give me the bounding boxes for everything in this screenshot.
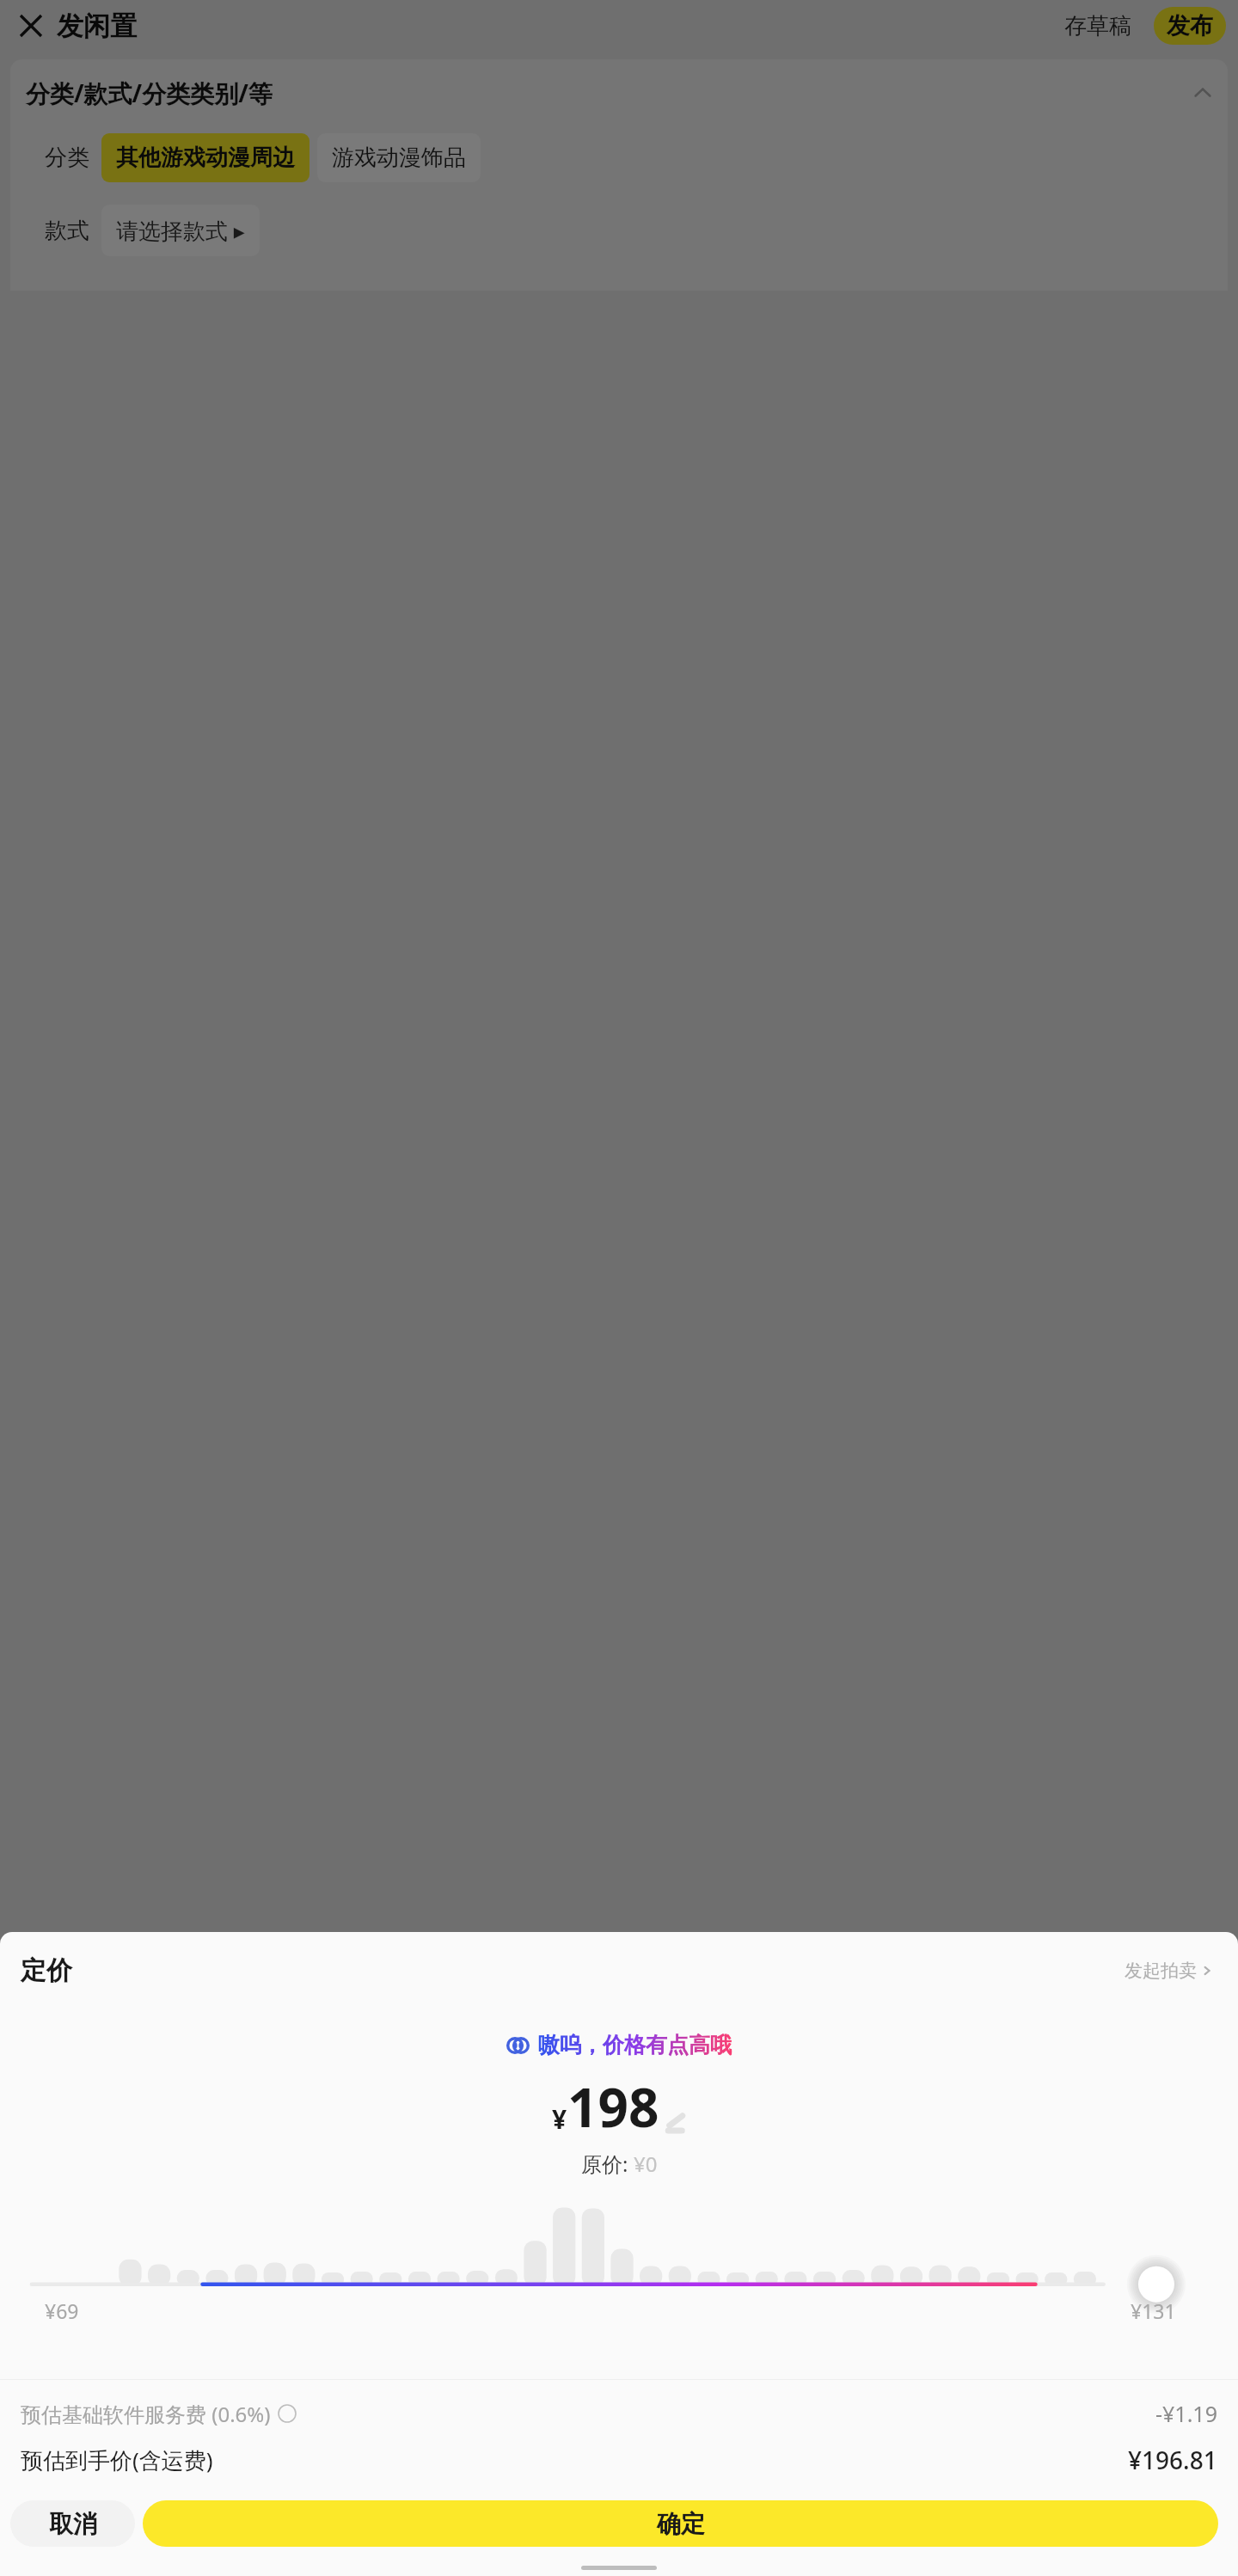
staticText: 原价: — [581, 2150, 634, 2178]
button[interactable]: 取消 — [10, 2500, 135, 2547]
button[interactable]: 关闭 — [12, 7, 50, 45]
staticText: -¥1.19 — [1155, 2399, 1217, 2428]
staticText: 确定 — [657, 2509, 705, 2539]
staticText: 分类/款式/分类类别/等 — [26, 77, 273, 109]
staticText: ¥69 — [45, 2297, 79, 2324]
staticText: ¥0 — [634, 2150, 658, 2178]
button[interactable]: 服务费说明 — [278, 2404, 297, 2423]
staticText: 发起拍卖 — [1125, 1960, 1197, 1982]
staticText: ¥ — [552, 2101, 567, 2137]
staticText: 预估基础软件服务费 (0.6%) — [21, 2400, 271, 2428]
staticText: 款式 — [45, 217, 89, 245]
staticText: 请选择款式 ▸ — [116, 215, 245, 246]
button[interactable]: 确定 — [143, 2500, 1218, 2547]
staticText: ¥196.81 — [1128, 2444, 1217, 2476]
other: 收起 — [1193, 83, 1212, 102]
staticText: 发闲置 — [57, 9, 137, 43]
button[interactable]: 游戏动漫饰品 — [317, 133, 481, 182]
button[interactable]: 存草稿 — [1057, 7, 1138, 46]
button[interactable]: ¥ — [552, 2070, 687, 2143]
button[interactable]: 发起拍卖 — [1121, 1954, 1217, 1987]
button[interactable]: 发布 — [1154, 7, 1226, 45]
staticText: 嗷呜，价格有点高哦 — [538, 2032, 732, 2058]
staticText: ¥131 — [1131, 2297, 1176, 2324]
other: 编辑价格 — [665, 2112, 687, 2134]
button[interactable]: 请选择款式 ▸ — [101, 205, 260, 256]
staticText: 存草稿 — [1064, 12, 1131, 40]
button[interactable]: 其他游戏动漫周边 — [101, 133, 309, 182]
staticText: 定价 — [21, 1954, 72, 1987]
staticText: 其他游戏动漫周边 — [116, 144, 295, 172]
staticText: 分类 — [45, 144, 89, 172]
staticText: 游戏动漫饰品 — [332, 144, 466, 172]
staticText: 发布 — [1167, 11, 1213, 40]
staticText: 198 — [567, 2070, 659, 2143]
staticText: 取消 — [49, 2509, 97, 2539]
staticText: 预估到手价(含运费) — [21, 2444, 213, 2475]
